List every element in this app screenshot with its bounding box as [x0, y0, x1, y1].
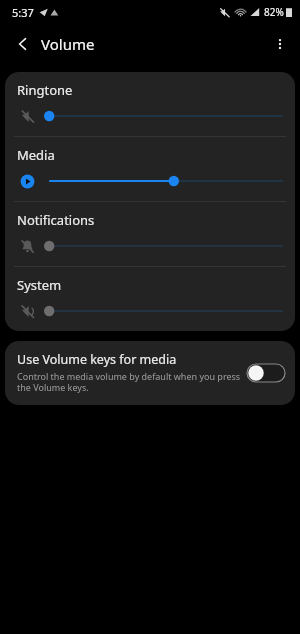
button[interactable]: Ringtone — [5, 72, 295, 136]
button[interactable]: Media — [5, 137, 295, 201]
button[interactable]: Volume slider — [44, 302, 283, 320]
staticText: Use Volume keys for media — [17, 351, 177, 368]
staticText: Media — [17, 146, 55, 164]
button[interactable]: Volume slider — [44, 172, 283, 190]
staticText: 82% — [264, 5, 284, 19]
staticText: Ringtone — [17, 81, 73, 99]
button[interactable]: System — [5, 267, 295, 331]
button[interactable]: Volume slider — [44, 237, 283, 255]
button[interactable]: Back — [10, 31, 36, 57]
staticText: 5:37 — [12, 5, 34, 20]
button[interactable]: Use Volume keys for media toggle — [247, 362, 285, 384]
button[interactable]: Use Volume keys for media — [5, 341, 295, 405]
button[interactable]: Notifications — [5, 202, 295, 266]
staticText: Control the media volume by default when… — [17, 370, 241, 394]
staticText: Volume — [41, 34, 95, 54]
button[interactable]: Volume slider — [44, 107, 283, 125]
staticText: Notifications — [17, 211, 95, 229]
staticText: System — [17, 276, 62, 294]
button[interactable]: More options — [266, 30, 294, 58]
